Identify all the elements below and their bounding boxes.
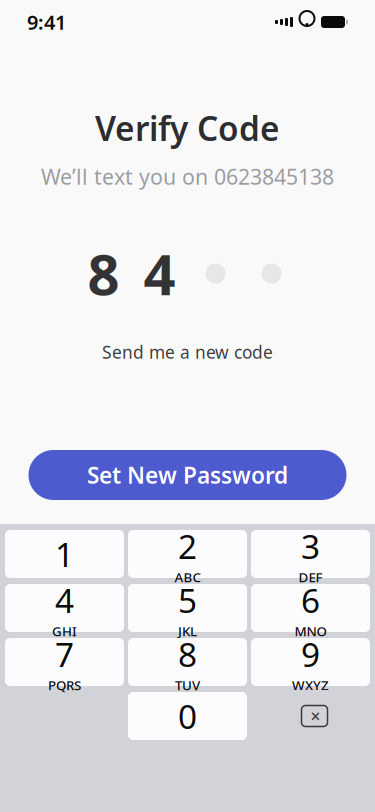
- button[interactable]: 8: [128, 638, 247, 686]
- staticText: 2: [178, 524, 197, 568]
- button[interactable]: 0: [128, 692, 247, 740]
- staticText: PQRS: [48, 676, 81, 694]
- button[interactable]: Send me a new code: [92, 335, 283, 370]
- button[interactable]: 4: [5, 584, 124, 632]
- staticText: DEF: [298, 568, 322, 586]
- staticText: 4: [143, 236, 175, 311]
- staticText: 5: [178, 578, 197, 622]
- button[interactable]: 6: [251, 584, 370, 632]
- button[interactable]: 1: [5, 530, 124, 578]
- button[interactable]: 2: [128, 530, 247, 578]
- staticText: We’ll text you on 0623845138: [41, 162, 334, 191]
- staticText: 8: [87, 236, 119, 311]
- staticText: JKL: [178, 622, 197, 640]
- staticText: TUV: [175, 676, 200, 694]
- staticText: 1: [55, 532, 74, 576]
- button[interactable]: 3: [251, 530, 370, 578]
- staticText: 3: [301, 524, 320, 568]
- staticText: 9: [301, 632, 320, 676]
- staticText: WXYZ: [292, 676, 329, 694]
- staticText: MNO: [294, 622, 326, 640]
- staticText: 0: [178, 694, 197, 738]
- button[interactable]: Delete: [251, 692, 370, 740]
- button[interactable]: Set New Password: [28, 450, 346, 500]
- staticText: 6: [301, 578, 320, 622]
- staticText: Verify Code: [95, 106, 280, 150]
- staticText: GHI: [52, 622, 77, 640]
- staticText: 4: [55, 578, 74, 622]
- staticText: ×: [310, 704, 320, 727]
- staticText: Send me a new code: [102, 341, 273, 364]
- button[interactable]: 5: [128, 584, 247, 632]
- staticText: 8: [178, 632, 197, 676]
- button[interactable]: 7: [5, 638, 124, 686]
- staticText: 9:41: [27, 9, 66, 35]
- staticText: ABC: [174, 568, 200, 586]
- staticText: Set New Password: [87, 460, 288, 490]
- staticText: 7: [55, 632, 74, 676]
- button[interactable]: 9: [251, 638, 370, 686]
